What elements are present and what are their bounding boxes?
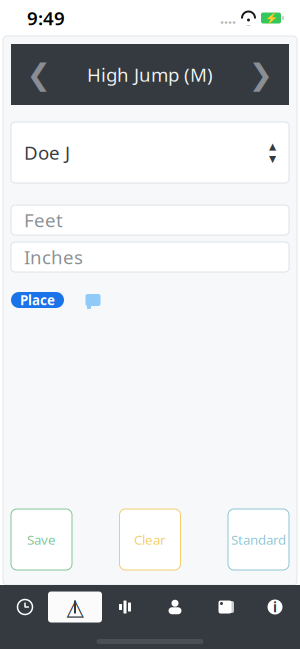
staticText: Doe J: [24, 140, 70, 165]
button[interactable]: Info: [250, 585, 300, 629]
staticText: High Jump (M): [87, 62, 213, 87]
button[interactable]: Next event: [233, 44, 289, 105]
button[interactable]: Clear: [119, 509, 180, 570]
button[interactable]: Save: [11, 509, 72, 570]
button[interactable]: Place: [11, 292, 64, 308]
button[interactable]: Results: [100, 585, 150, 629]
staticText: △: [66, 594, 83, 620]
button[interactable]: Feet: [11, 205, 289, 235]
staticText: Inches: [24, 245, 83, 269]
staticText: Feet: [24, 208, 63, 232]
staticText: Save: [27, 531, 56, 548]
button[interactable]: Doe J: [11, 122, 289, 183]
staticText: ❯: [248, 58, 273, 91]
staticText: ❮: [26, 58, 51, 91]
button[interactable]: Recent: [0, 585, 50, 629]
staticText: ⚡: [264, 12, 277, 24]
button[interactable]: Athletes: [150, 585, 200, 629]
staticText: ▼: [269, 153, 276, 164]
button[interactable]: Inches: [11, 242, 289, 272]
staticText: ▲: [269, 141, 276, 151]
button[interactable]: Standard: [228, 509, 289, 570]
staticText: 9:49: [27, 6, 65, 30]
button[interactable]: Previous event: [11, 44, 67, 105]
staticText: Place: [20, 291, 55, 309]
button[interactable]: Tags: [200, 585, 250, 629]
staticText: Clear: [134, 531, 166, 548]
staticText: Standard: [231, 531, 286, 548]
staticText: i: [273, 598, 277, 616]
button[interactable]: Events: [50, 585, 100, 629]
button[interactable]: Comment: [80, 290, 106, 310]
staticText: ....: [220, 8, 236, 28]
